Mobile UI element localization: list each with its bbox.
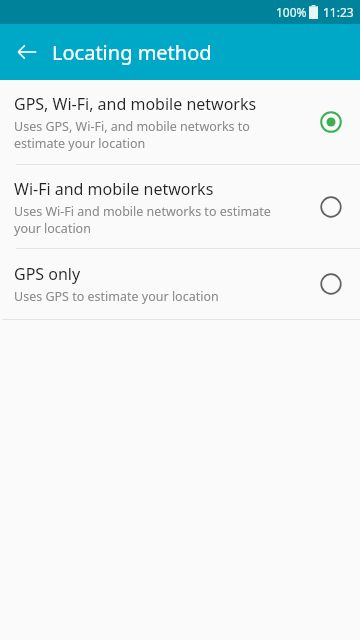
staticText: Uses GPS, Wi-Fi, and mobile networks to … [14,118,300,151]
button[interactable]: Back [11,36,43,68]
button[interactable]: GPS only [0,249,360,319]
staticText: 11:23 [323,4,354,20]
staticText: GPS only [14,263,81,285]
staticText: Locating method [52,39,212,66]
staticText: 100% [276,4,307,20]
staticText: GPS, Wi-Fi, and mobile networks [14,93,257,115]
button[interactable]: GPS, Wi-Fi, and mobile networks [0,80,360,164]
staticText: Uses GPS to estimate your location [14,288,219,305]
staticText: Wi-Fi and mobile networks [14,178,214,200]
button[interactable]: Wi-Fi and mobile networks [0,165,360,248]
staticText: Uses Wi-Fi and mobile networks to estima… [14,203,300,236]
